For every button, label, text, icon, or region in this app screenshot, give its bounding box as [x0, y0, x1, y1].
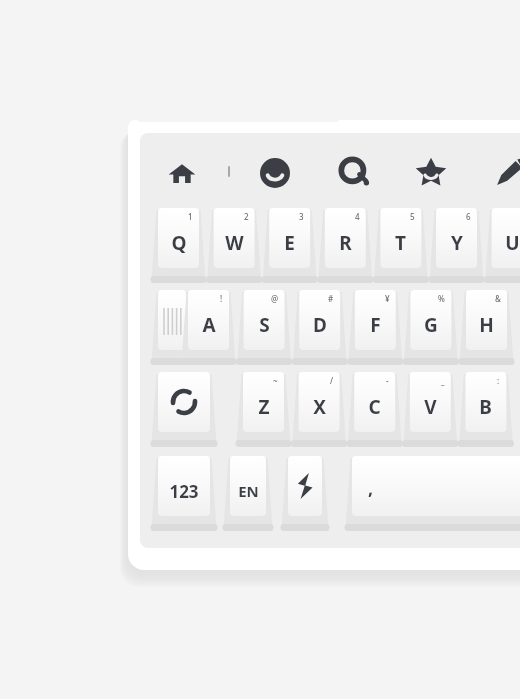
staticText: 3 — [299, 211, 304, 222]
button[interactable]: _ — [410, 372, 451, 432]
button[interactable]: 3 — [269, 208, 310, 268]
staticText: : — [497, 375, 500, 386]
staticText: ! — [220, 293, 223, 304]
staticText: @ — [271, 293, 279, 304]
staticText: V — [424, 394, 437, 420]
staticText: U — [505, 230, 520, 256]
button[interactable]: Edit — [492, 155, 520, 191]
staticText: , — [368, 476, 374, 501]
button[interactable]: Emoji — [257, 155, 293, 191]
button[interactable]: 5 — [380, 208, 421, 268]
staticText: 5 — [410, 211, 415, 222]
button[interactable]: Shift — [158, 372, 210, 432]
staticText: Q — [171, 230, 187, 256]
button[interactable]: 123 — [158, 456, 210, 516]
button[interactable]: : — [465, 372, 506, 432]
button[interactable]: 6 — [436, 208, 477, 268]
staticText: / — [330, 375, 334, 386]
button[interactable]: / — [299, 372, 340, 432]
staticText: # — [328, 293, 334, 304]
staticText: - — [386, 375, 389, 386]
button[interactable]: ~ — [243, 372, 284, 432]
button[interactable]: Favorites — [413, 155, 449, 191]
staticText: T — [395, 230, 406, 256]
staticText: E — [284, 230, 295, 256]
button[interactable]: & — [466, 290, 507, 350]
button[interactable]: 7 — [492, 208, 520, 268]
button[interactable]: Search — [336, 155, 372, 191]
staticText: ~ — [273, 375, 278, 386]
button[interactable]: Tab — [158, 290, 186, 350]
staticText: H — [479, 312, 494, 338]
button[interactable]: 4 — [325, 208, 366, 268]
staticText: G — [424, 312, 438, 338]
staticText: 123 — [169, 480, 199, 503]
staticText: ¥ — [385, 293, 390, 304]
button[interactable]: Home — [164, 155, 200, 191]
staticText: A — [202, 312, 216, 338]
staticText: 2 — [244, 211, 249, 222]
staticText: S — [259, 312, 270, 338]
staticText: X — [313, 394, 326, 420]
button[interactable]: % — [410, 290, 451, 350]
staticText: 4 — [355, 211, 360, 222]
staticText: B — [479, 394, 492, 420]
button[interactable]: , — [352, 456, 520, 516]
button[interactable]: # — [299, 290, 340, 350]
button[interactable]: 1 — [158, 208, 199, 268]
staticText: R — [339, 230, 352, 256]
staticText: W — [225, 230, 244, 256]
button[interactable]: ¥ — [355, 290, 396, 350]
button[interactable]: 2 — [214, 208, 255, 268]
staticText: F — [370, 312, 381, 338]
button[interactable]: Voice input — [288, 456, 322, 516]
button[interactable]: ! — [188, 290, 229, 350]
button[interactable]: - — [354, 372, 395, 432]
staticText: % — [438, 293, 445, 304]
staticText: 1 — [188, 211, 193, 222]
staticText: EN — [238, 481, 259, 501]
button[interactable]: @ — [244, 290, 285, 350]
staticText: D — [313, 312, 327, 338]
staticText: C — [368, 394, 381, 420]
button[interactable]: EN — [230, 456, 266, 516]
staticText: Y — [451, 230, 463, 256]
staticText: _ — [441, 375, 445, 386]
staticText: Z — [258, 394, 270, 420]
staticText: 6 — [466, 211, 471, 222]
staticText: & — [495, 293, 501, 304]
